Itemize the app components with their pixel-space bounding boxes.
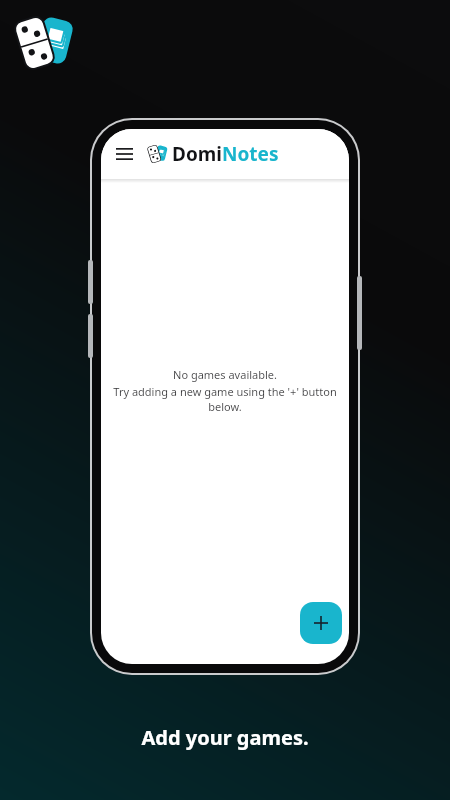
button[interactable]: Add a new game — [300, 602, 342, 644]
staticText: Try adding a new game using the '+' butt… — [101, 384, 349, 414]
staticText: No games available. — [173, 367, 277, 382]
staticText: DomiNotes — [172, 141, 279, 167]
staticText: Add your games. — [141, 724, 309, 751]
button[interactable]: Open navigation menu — [110, 140, 138, 168]
